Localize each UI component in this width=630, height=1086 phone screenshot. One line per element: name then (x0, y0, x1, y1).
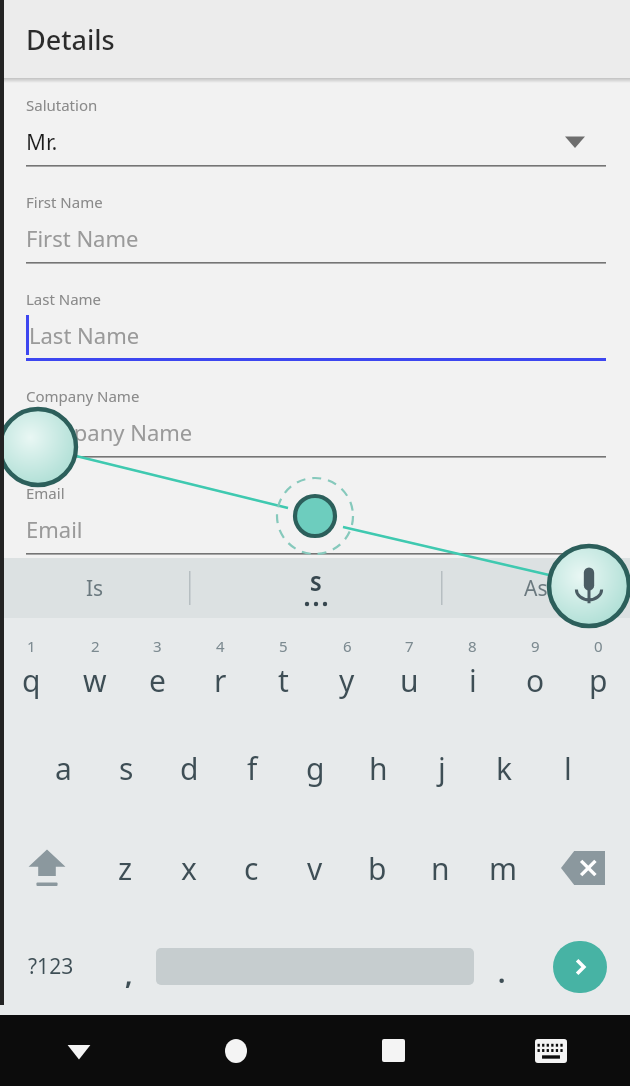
staticText: Email (26, 483, 65, 503)
staticText: First Name (26, 223, 139, 253)
staticText: j (438, 748, 446, 789)
button[interactable]: 1 (0, 618, 63, 718)
staticText: t (278, 660, 289, 701)
staticText: Company Name (26, 417, 193, 447)
button[interactable]: l (536, 718, 599, 818)
staticText: x (181, 848, 197, 889)
button[interactable]: v (283, 818, 346, 918)
button[interactable]: Last Name (26, 289, 606, 371)
staticText: . (498, 955, 506, 990)
staticText: 7 (405, 636, 414, 656)
staticText: Last Name (26, 289, 102, 309)
button[interactable]: 8 (441, 618, 504, 718)
staticText: Mr. (26, 126, 58, 156)
button[interactable]: m (472, 818, 535, 918)
staticText: z (118, 848, 133, 889)
staticText: l (564, 748, 572, 789)
button[interactable]: h (347, 718, 410, 818)
button[interactable]: Recents (314, 1015, 472, 1086)
button[interactable]: f (221, 718, 284, 818)
button[interactable]: Shift (0, 818, 94, 918)
staticText: ?123 (28, 952, 74, 981)
button[interactable]: Home (157, 1015, 314, 1086)
button[interactable]: , (101, 918, 156, 1015)
button[interactable]: Details (0, 0, 630, 78)
button[interactable]: As (442, 558, 630, 618)
staticText: 5 (279, 636, 288, 656)
button[interactable]: S (190, 558, 441, 618)
staticText: S (310, 569, 322, 598)
button[interactable]: First Name (26, 192, 606, 274)
button[interactable]: Back (0, 1015, 157, 1086)
button[interactable]: Email (26, 483, 606, 565)
staticText: 9 (531, 636, 540, 656)
button[interactable]: 4 (189, 618, 252, 718)
staticText: g (306, 748, 325, 789)
staticText: k (496, 748, 513, 789)
staticText: s (119, 748, 134, 789)
button[interactable]: Keyboard (472, 1015, 630, 1086)
button[interactable]: 0 (567, 618, 630, 718)
button[interactable]: d (158, 718, 221, 818)
staticText: e (149, 660, 166, 701)
button[interactable]: c (220, 818, 283, 918)
staticText: Company Name (26, 386, 140, 406)
staticText: q (22, 660, 41, 701)
staticText: m (489, 848, 518, 889)
button[interactable]: Backspace (535, 818, 630, 918)
staticText: a (55, 748, 72, 789)
button[interactable]: 5 (252, 618, 315, 718)
staticText: Salutation (26, 95, 98, 115)
button[interactable]: 6 (315, 618, 378, 718)
staticText: v (307, 848, 323, 889)
staticText: 3 (153, 636, 162, 656)
staticText: p (589, 660, 608, 701)
button[interactable]: 2 (63, 618, 126, 718)
button[interactable]: b (346, 818, 409, 918)
staticText: 8 (468, 636, 477, 656)
staticText: Email (26, 514, 83, 544)
button[interactable]: x (157, 818, 220, 918)
staticText: , (125, 957, 133, 992)
staticText: w (83, 660, 107, 701)
staticText: First Name (26, 192, 103, 212)
button[interactable]: . (474, 918, 529, 1015)
staticText: Details (26, 21, 115, 58)
button[interactable]: g (284, 718, 347, 818)
button[interactable]: 3 (126, 618, 189, 718)
staticText: b (368, 848, 387, 889)
staticText: u (400, 660, 419, 701)
staticText: 6 (343, 636, 352, 656)
staticText: d (180, 748, 199, 789)
staticText: 0 (594, 636, 603, 656)
staticText: c (244, 848, 259, 889)
button[interactable]: n (409, 818, 472, 918)
staticText: Last Name (29, 320, 140, 350)
staticText: 2 (91, 636, 100, 656)
button[interactable]: Enter (529, 918, 630, 1015)
button[interactable]: j (410, 718, 473, 818)
button[interactable]: z (94, 818, 157, 918)
staticText: h (369, 748, 388, 789)
staticText: i (469, 660, 477, 701)
button[interactable]: 9 (504, 618, 567, 718)
button[interactable] (156, 918, 474, 1015)
button[interactable]: s (95, 718, 158, 818)
staticText: o (526, 660, 545, 701)
staticText: n (431, 848, 450, 889)
button[interactable]: Salutation (26, 95, 606, 177)
staticText: As (524, 574, 548, 603)
button[interactable]: ?123 (0, 918, 101, 1015)
button[interactable]: Company Name (26, 386, 606, 468)
button[interactable]: a (31, 718, 95, 818)
staticText: 1 (27, 636, 36, 656)
staticText: 4 (216, 636, 225, 656)
staticText: f (247, 748, 258, 789)
staticText: Is (86, 574, 104, 603)
staticText: y (339, 660, 355, 701)
button[interactable]: k (473, 718, 536, 818)
button[interactable]: Is (0, 558, 189, 618)
staticText: r (214, 660, 227, 701)
button[interactable]: 7 (378, 618, 441, 718)
